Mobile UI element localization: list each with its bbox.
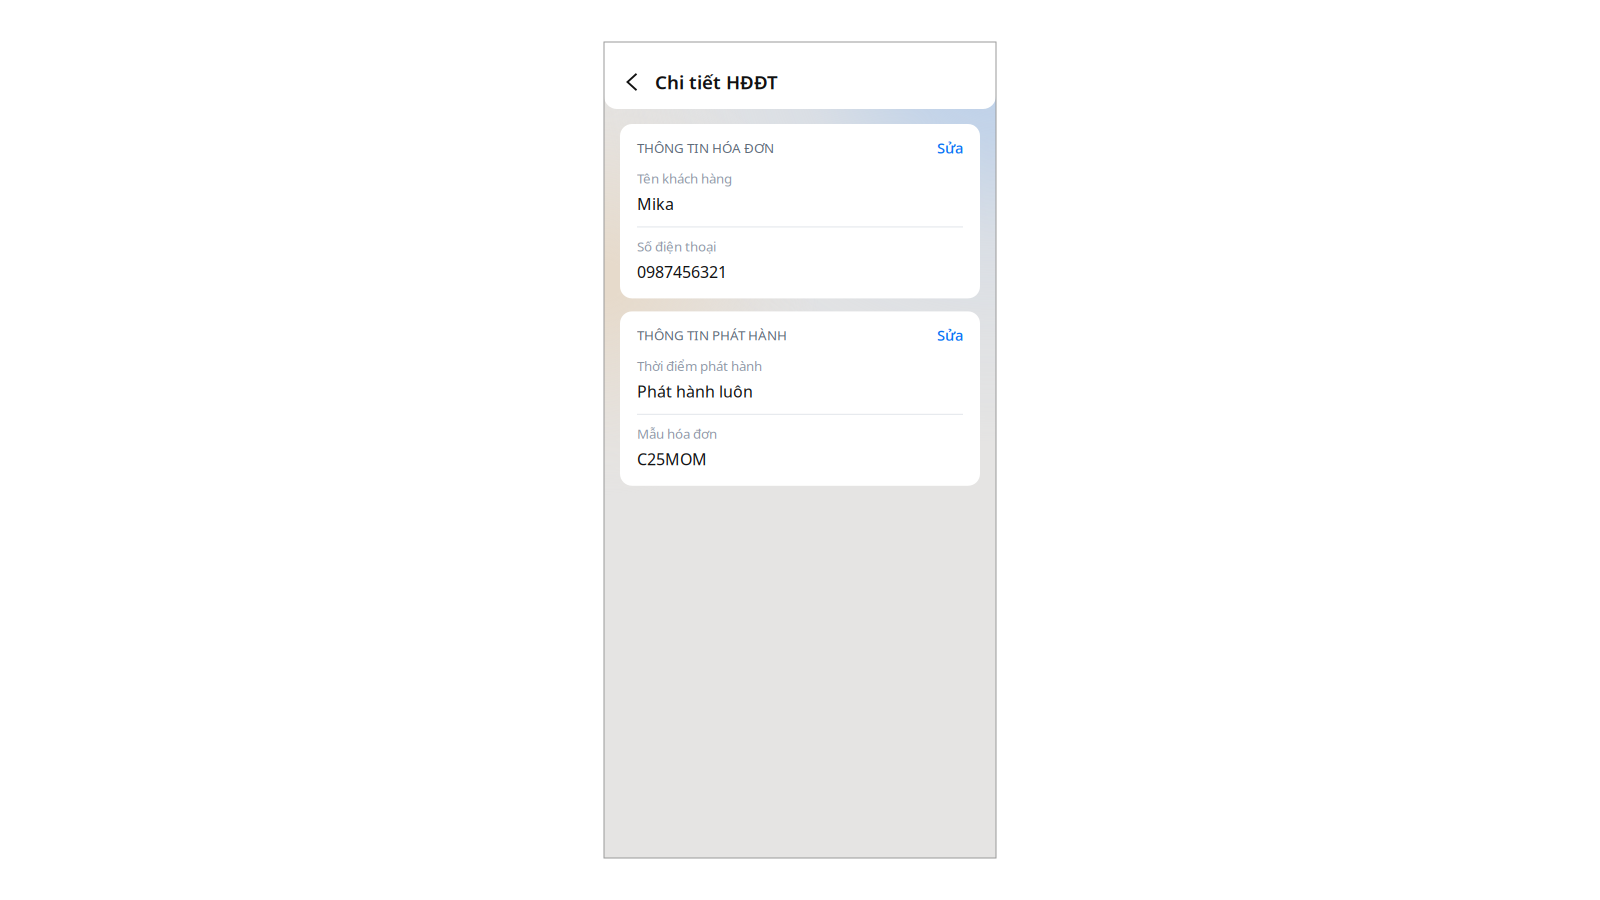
button[interactable]: Back	[618, 62, 646, 102]
staticText: C25MOM	[637, 448, 707, 470]
staticText: 0987456321	[637, 261, 727, 282]
staticText: Chi tiết HĐĐT	[655, 70, 778, 94]
staticText: Thời điểm phát hành	[637, 357, 762, 375]
staticText: Số điện thoại	[637, 237, 716, 255]
staticText: Sửa	[937, 325, 963, 345]
staticText: THÔNG TIN HÓA ĐƠN	[637, 139, 774, 157]
button[interactable]: Sửa	[937, 325, 963, 345]
staticText: Mẫu hóa đơn	[637, 425, 717, 442]
staticText: Sửa	[937, 138, 963, 157]
staticText: Phát hành luôn	[637, 381, 753, 402]
button[interactable]: Sửa	[937, 138, 963, 157]
staticText: Tên khách hàng	[637, 169, 732, 187]
staticText: THÔNG TIN PHÁT HÀNH	[637, 326, 787, 344]
staticText: Mika	[637, 193, 674, 214]
